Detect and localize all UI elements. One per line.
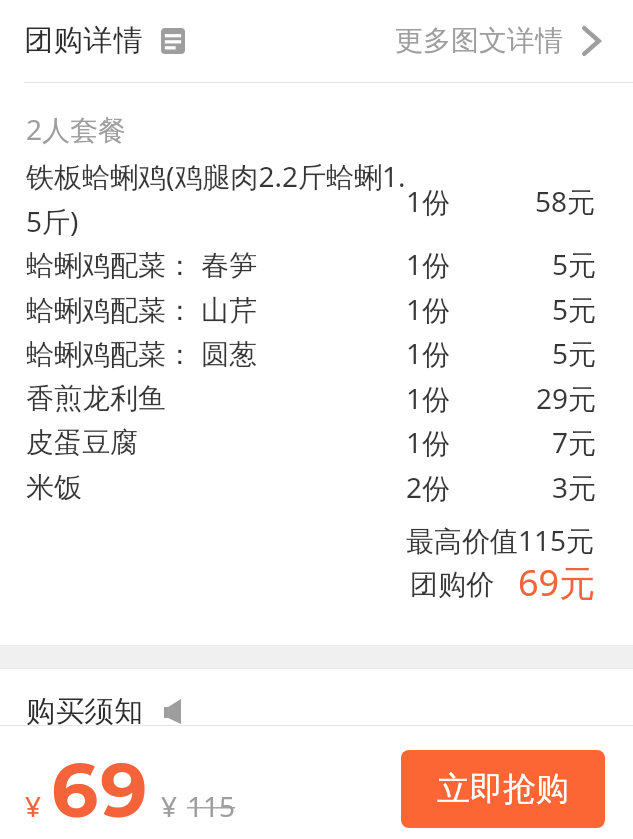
staticText: 58元 [535,182,596,220]
staticText: 1份 [406,423,451,461]
staticText: 蛤蜊鸡配菜： 圆葱 [26,334,258,372]
button[interactable]: 蛤蜊鸡配菜： 圆葱 [0,331,633,375]
button[interactable]: 香煎龙利鱼 [0,376,633,420]
staticText: 1份 [406,182,451,220]
staticText: 2人套餐 [26,110,127,148]
staticText: 购买须知 [26,693,144,730]
other: Announcement [164,699,181,724]
staticText: 115 [187,787,236,825]
staticText: 皮蛋豆腐 [26,425,138,460]
staticText: 香煎龙利鱼 [26,381,166,416]
staticText: 1份 [406,334,451,372]
staticText: 1份 [406,379,451,417]
staticText: 7元 [551,423,596,461]
button[interactable]: 立即抢购 [401,750,605,828]
button[interactable]: 米饭 [0,465,633,509]
button[interactable]: 购买须知 [26,693,181,730]
staticText: 团购价 [410,567,494,602]
staticText: 团购详情 [24,22,144,59]
staticText: 29元 [535,379,596,417]
staticText: ¥ [161,787,178,825]
staticText: 5元 [551,245,596,283]
staticText: 69元 [518,558,596,600]
staticText: 3元 [551,468,596,506]
other: Menu [161,28,185,54]
staticText: 最高价值115元 [406,521,595,559]
button[interactable]: 蛤蜊鸡配菜： 春笋 [0,242,633,286]
staticText: 更多图文详情 [395,23,563,58]
staticText: ¥ [25,787,42,825]
staticText: 1份 [406,290,451,328]
button[interactable]: 皮蛋豆腐 [0,420,633,464]
button[interactable]: 团购详情 [24,22,185,59]
button[interactable]: 更多图文详情 [395,23,601,58]
staticText: 5元 [551,334,596,372]
staticText: 蛤蜊鸡配菜： 春笋 [26,245,258,283]
staticText: 蛤蜊鸡配菜： 山芹 [26,290,258,328]
staticText: 5元 [551,290,596,328]
staticText: 69 [51,745,150,835]
staticText: 立即抢购 [437,768,569,810]
staticText: 米饭 [26,470,82,505]
staticText: 1份 [406,245,451,283]
staticText: 2份 [406,468,451,506]
button[interactable]: 蛤蜊鸡配菜： 山芹 [0,287,633,331]
staticText: 铁板蛤蜊鸡(鸡腿肉2.2斤蛤蜊1. 5斤) [26,157,406,240]
